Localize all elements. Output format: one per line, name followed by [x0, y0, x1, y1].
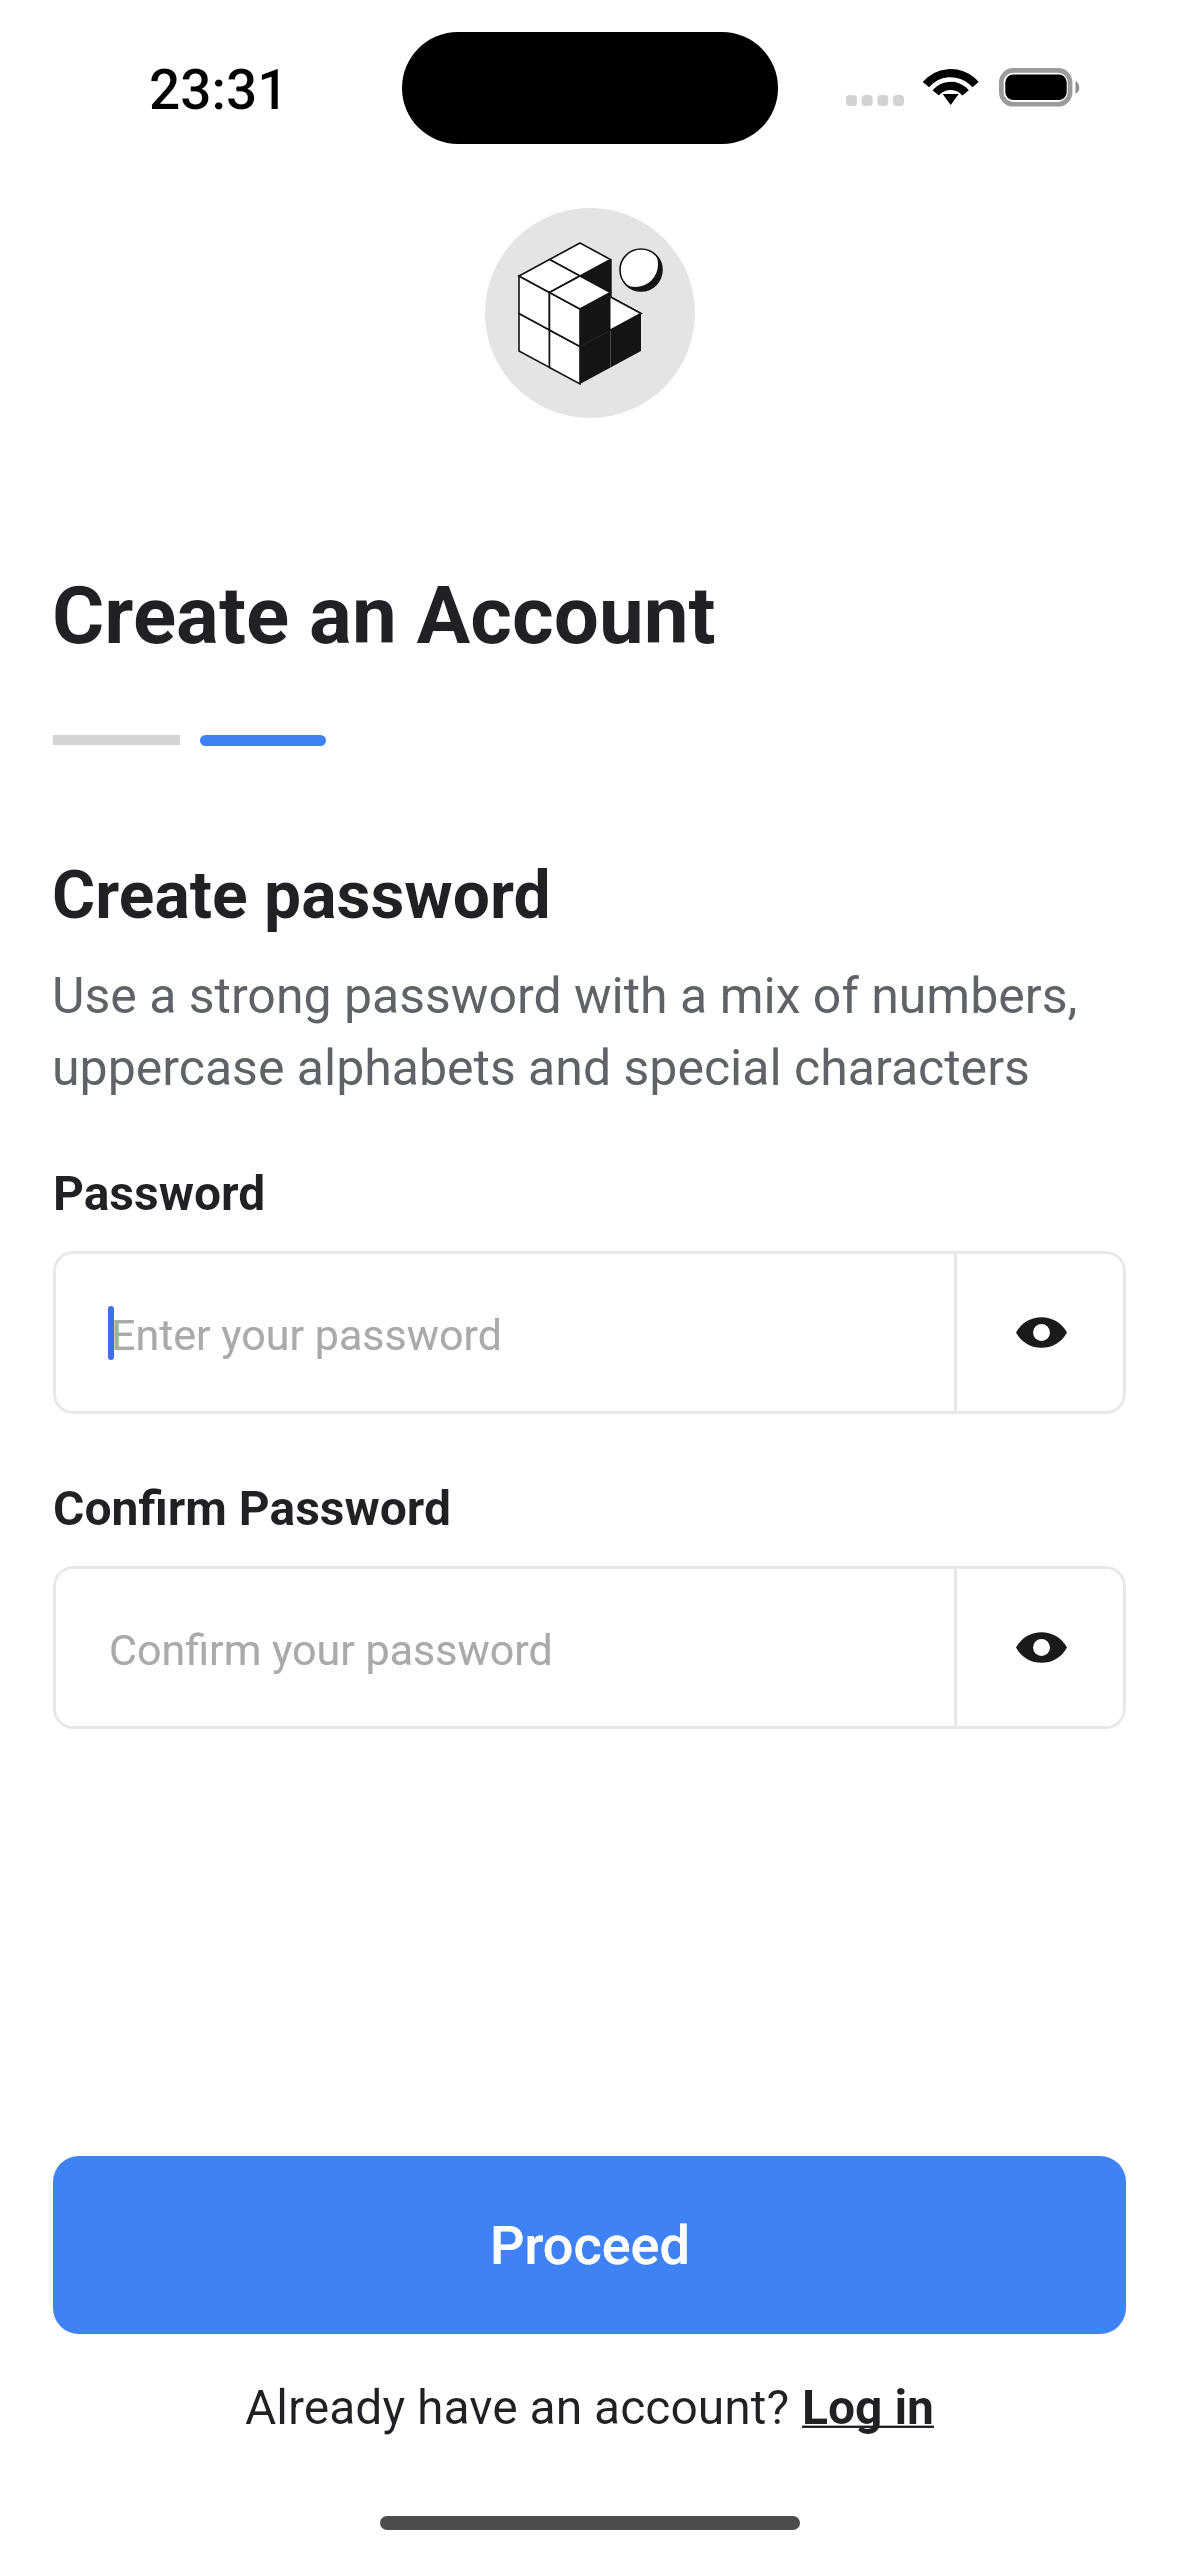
- staticText: Password: [53, 1165, 266, 1221]
- staticText: Use a strong password with a mix of numb…: [52, 967, 1112, 1097]
- button[interactable]: Enter your password: [53, 1251, 1126, 1414]
- button[interactable]: Log in: [802, 2379, 935, 2435]
- button[interactable]: Proceed: [53, 2156, 1126, 2334]
- button[interactable]: Confirm your password: [53, 1566, 1126, 1729]
- staticText: Create password: [52, 857, 551, 934]
- staticText: 23:31: [149, 58, 289, 122]
- staticText: Already have an account?: [245, 2379, 802, 2435]
- staticText: Confirm Password: [53, 1480, 451, 1536]
- staticText: Create an Account: [52, 569, 716, 663]
- staticText: Enter your password: [111, 1310, 502, 1360]
- staticText: Log in: [802, 2379, 935, 2435]
- button[interactable]: Show password: [957, 1251, 1126, 1414]
- staticText: Proceed: [490, 2214, 690, 2277]
- staticText: Confirm your password: [109, 1625, 553, 1675]
- button[interactable]: Show password: [957, 1566, 1126, 1729]
